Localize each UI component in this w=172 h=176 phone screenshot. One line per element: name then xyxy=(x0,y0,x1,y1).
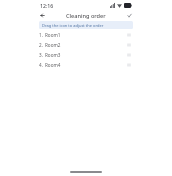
button[interactable]: Drag to reorder Room4 xyxy=(125,61,133,69)
staticText: Room2 xyxy=(45,42,61,48)
staticText: Room3 xyxy=(45,52,61,58)
staticText: 12:16 xyxy=(40,2,54,9)
button[interactable]: Confirm order xyxy=(125,11,134,20)
button[interactable]: 4. xyxy=(36,60,136,70)
staticText: 3. xyxy=(39,52,43,58)
staticText: 1. xyxy=(39,32,43,38)
staticText: 2. xyxy=(39,42,43,48)
button[interactable]: Drag the icon to adjust the order xyxy=(39,21,133,29)
button[interactable]: 1. xyxy=(36,30,136,40)
button[interactable]: Back xyxy=(38,11,47,20)
button[interactable]: Drag to reorder Room1 xyxy=(125,31,133,39)
button[interactable]: 2. xyxy=(36,40,136,50)
staticText: 4. xyxy=(39,62,43,68)
button[interactable]: Drag to reorder Room2 xyxy=(125,41,133,49)
staticText: Drag the icon to adjust the order xyxy=(42,23,104,28)
button[interactable]: 3. xyxy=(36,50,136,60)
staticText: Room1 xyxy=(45,32,61,38)
button[interactable]: Drag to reorder Room3 xyxy=(125,51,133,59)
staticText: Cleaning order xyxy=(66,12,106,20)
staticText: Room4 xyxy=(45,62,61,68)
